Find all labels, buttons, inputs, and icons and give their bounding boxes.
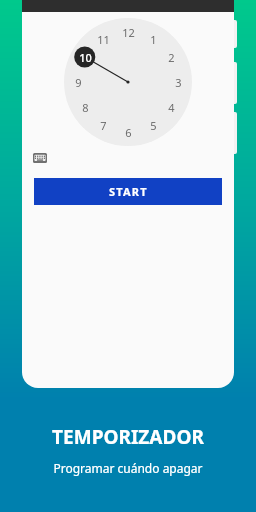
button[interactable]: 5: [142, 116, 164, 134]
button[interactable]: START: [34, 178, 222, 205]
staticText: 10: [79, 50, 92, 65]
button[interactable]: Switch to keyboard input: [30, 148, 50, 168]
button[interactable]: 1: [142, 30, 164, 48]
staticText: 12: [122, 25, 135, 40]
staticText: 7: [100, 118, 107, 133]
button[interactable]: 12: [117, 23, 139, 41]
staticText: 6: [125, 125, 132, 140]
staticText: 3: [175, 75, 182, 90]
button[interactable]: 10: [74, 48, 96, 66]
button[interactable]: 8: [74, 98, 96, 116]
button[interactable]: 11: [92, 30, 114, 48]
staticText: 4: [168, 100, 175, 115]
button[interactable]: 7: [92, 116, 114, 134]
button[interactable]: 6: [117, 123, 139, 141]
button[interactable]: 2: [160, 48, 182, 66]
staticText: 8: [82, 100, 89, 115]
button[interactable]: 3: [167, 73, 189, 91]
button[interactable]: 4: [160, 98, 182, 116]
staticText: 2: [168, 50, 175, 65]
button[interactable]: 9: [67, 73, 89, 91]
staticText: Programar cuándo apagar: [53, 460, 203, 476]
staticText: 1: [150, 32, 157, 47]
staticText: 9: [75, 75, 82, 90]
staticText: 11: [97, 32, 110, 47]
staticText: TEMPORIZADOR: [52, 424, 204, 450]
staticText: 5: [150, 118, 157, 133]
staticText: START: [109, 184, 148, 199]
